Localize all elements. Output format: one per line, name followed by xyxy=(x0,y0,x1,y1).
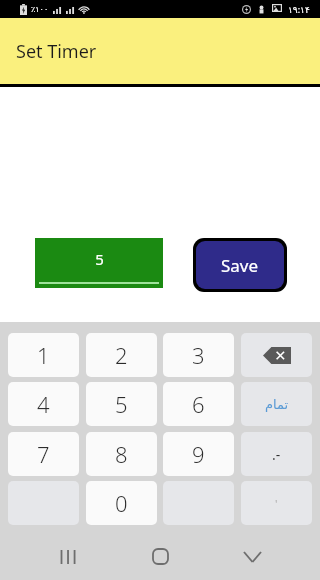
button[interactable]: Backspace xyxy=(241,333,312,377)
button[interactable]: 7 xyxy=(8,432,79,476)
staticText: .- xyxy=(272,445,281,464)
button[interactable]: 9 xyxy=(163,432,234,476)
button[interactable]: 4 xyxy=(8,382,79,426)
staticText: 8 xyxy=(115,439,128,469)
button[interactable]: 5 xyxy=(86,382,157,426)
staticText: 7 xyxy=(37,439,50,469)
staticText: ٪١٠٠ xyxy=(31,5,49,14)
button[interactable]: Save xyxy=(196,241,284,289)
button[interactable]: 5 xyxy=(35,238,163,288)
staticText: 4 xyxy=(37,389,50,419)
button[interactable]: Home xyxy=(136,533,184,580)
staticText: 2 xyxy=(115,340,128,370)
button[interactable]: Hide keyboard xyxy=(228,533,276,580)
staticText: تمام xyxy=(265,397,289,412)
staticText: Set Timer xyxy=(16,39,97,64)
staticText: 1 xyxy=(37,340,50,370)
button[interactable]: 6 xyxy=(163,382,234,426)
staticText: 0 xyxy=(115,488,128,518)
staticText: 5 xyxy=(95,249,104,269)
button[interactable]: .- xyxy=(241,432,312,476)
button[interactable]: 2 xyxy=(86,333,157,377)
button[interactable]: 8 xyxy=(86,432,157,476)
button[interactable]: 1 xyxy=(8,333,79,377)
button[interactable]: Recents xyxy=(44,533,92,580)
staticText: 9 xyxy=(192,439,205,469)
staticText: 3 xyxy=(192,340,205,370)
staticText: Save xyxy=(221,254,259,277)
button[interactable]: 0 xyxy=(86,481,157,525)
staticText: 5 xyxy=(115,389,128,419)
button[interactable]: تمام xyxy=(241,382,312,426)
staticText: ' xyxy=(275,496,278,511)
button[interactable]: 3 xyxy=(163,333,234,377)
staticText: ١٩:١۴ xyxy=(288,3,310,15)
staticText: 6 xyxy=(192,389,205,419)
